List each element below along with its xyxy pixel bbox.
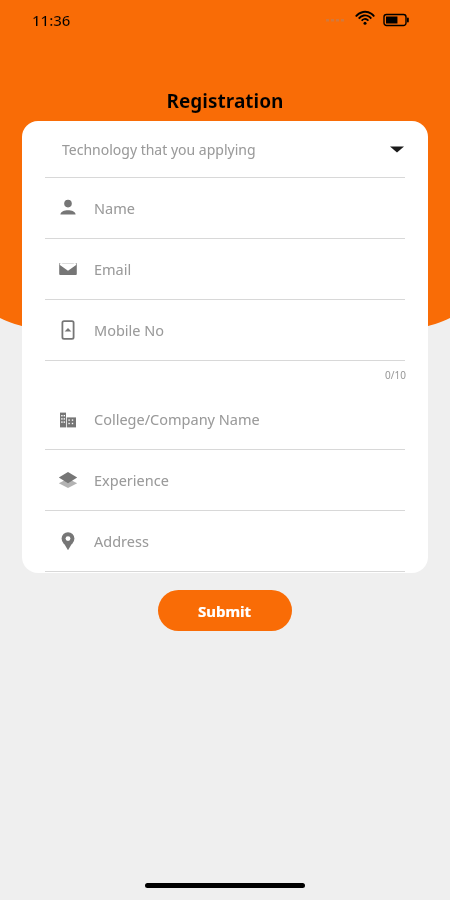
button[interactable]: Name: [22, 178, 428, 238]
staticText: 0/10: [385, 368, 406, 382]
staticText: Submit: [198, 601, 252, 621]
staticText: Registration: [0, 88, 450, 114]
staticText: Email: [94, 259, 132, 279]
button[interactable]: Address: [22, 511, 428, 571]
other: Name: [58, 198, 78, 218]
button[interactable]: Technology that you applying: [22, 121, 428, 177]
staticText: Name: [94, 198, 135, 218]
button[interactable]: College/Company Name: [22, 389, 428, 449]
other: Experience: [58, 470, 78, 490]
staticText: 11:36: [32, 10, 71, 30]
staticText: Experience: [94, 470, 169, 490]
staticText: Technology that you applying: [62, 140, 256, 159]
button[interactable]: Submit: [158, 590, 292, 631]
staticText: Mobile No: [94, 320, 165, 340]
button[interactable]: Mobile No: [22, 300, 428, 360]
staticText: College/Company Name: [94, 409, 260, 429]
other: College/Company Name: [58, 409, 78, 429]
staticText: Address: [94, 531, 149, 551]
other: Email: [58, 259, 78, 279]
other: Address: [58, 531, 78, 551]
other: Mobile No: [58, 320, 78, 340]
button[interactable]: Experience: [22, 450, 428, 510]
button[interactable]: Email: [22, 239, 428, 299]
